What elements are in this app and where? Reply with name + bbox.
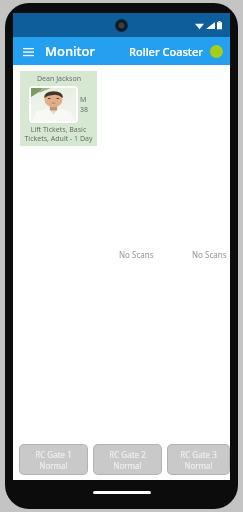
staticText: M [80, 95, 87, 105]
button[interactable]: Connection status indicator [209, 44, 224, 59]
staticText: Dean Jackson [37, 74, 81, 84]
staticText: No Scans [192, 249, 227, 260]
staticText: 38 [80, 105, 89, 115]
button[interactable]: Dean Jackson [20, 71, 97, 146]
staticText: RC Gate 3 [180, 449, 217, 460]
staticText: RC Gate 1 [35, 449, 72, 460]
staticText: Normal [184, 460, 213, 471]
button[interactable]: Roller Coaster [128, 44, 204, 59]
staticText: Normal [39, 460, 68, 471]
staticText: Lift Tickets, Basic Tickets, Adult - 1 D… [23, 125, 94, 143]
staticText: No Scans [119, 249, 154, 260]
button[interactable]: Open navigation drawer [19, 42, 37, 60]
button[interactable]: RC Gate 2 [94, 445, 161, 474]
button[interactable]: RC Gate 3 [168, 445, 229, 474]
staticText: Normal [113, 460, 142, 471]
staticText: Roller Coaster [129, 44, 203, 59]
staticText: Monitor [45, 42, 95, 60]
button[interactable]: RC Gate 1 [20, 445, 87, 474]
staticText: RC Gate 2 [109, 449, 146, 460]
